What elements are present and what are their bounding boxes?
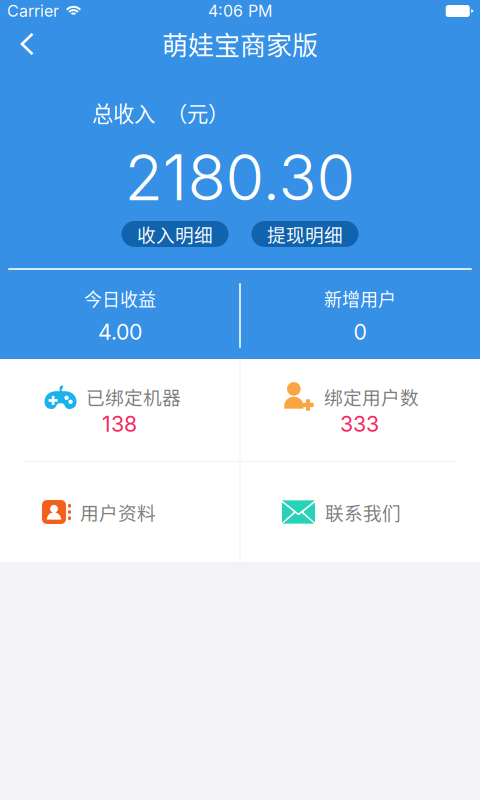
staticText: 萌娃宝商家版 — [162, 25, 318, 63]
staticText: 0 — [353, 319, 366, 345]
staticText: 2180.30 — [124, 140, 355, 215]
staticText: 用户资料 — [80, 498, 156, 525]
staticText: 333 — [340, 411, 379, 437]
button[interactable]: 用户资料 — [0, 462, 240, 562]
staticText: 绑定用户数 — [324, 383, 419, 410]
staticText: 4.00 — [98, 319, 142, 345]
button[interactable]: 收入明细 — [121, 221, 228, 247]
staticText: 今日收益 — [84, 285, 156, 312]
staticText: 提现明细 — [267, 220, 343, 247]
staticText: 138 — [102, 411, 137, 437]
button[interactable]: 绑定用户数 — [240, 359, 480, 461]
staticText: 4:06 PM — [208, 1, 272, 21]
staticText: 新增用户 — [324, 285, 396, 312]
staticText: 已绑定机器 — [86, 383, 181, 410]
button[interactable]: 已绑定机器 — [0, 359, 240, 461]
staticText: 总收入 （元） — [92, 97, 229, 128]
button[interactable]: Back — [0, 21, 53, 66]
staticText: Carrier — [7, 1, 59, 21]
staticText: 收入明细 — [137, 220, 213, 247]
button[interactable]: 提现明细 — [251, 221, 358, 247]
staticText: 联系我们 — [325, 498, 401, 525]
button[interactable]: 联系我们 — [240, 462, 480, 562]
